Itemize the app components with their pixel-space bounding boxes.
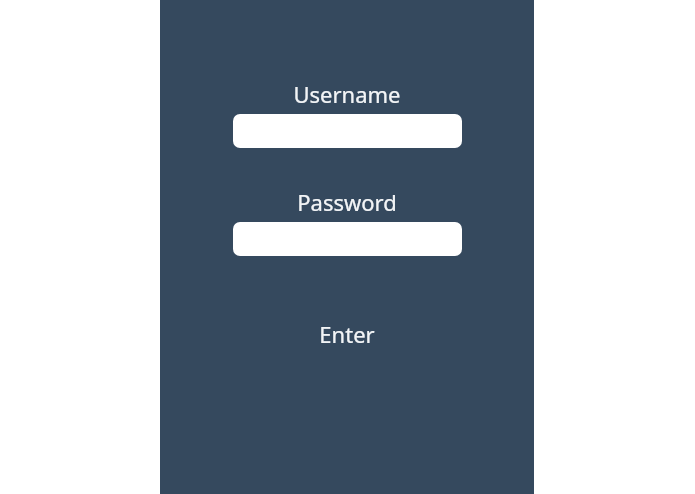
staticText: Username [293, 79, 401, 109]
button[interactable] [233, 114, 462, 148]
staticText: Enter [319, 319, 375, 349]
button[interactable]: Enter [319, 319, 375, 349]
button[interactable] [233, 222, 462, 256]
staticText: Password [297, 187, 397, 217]
